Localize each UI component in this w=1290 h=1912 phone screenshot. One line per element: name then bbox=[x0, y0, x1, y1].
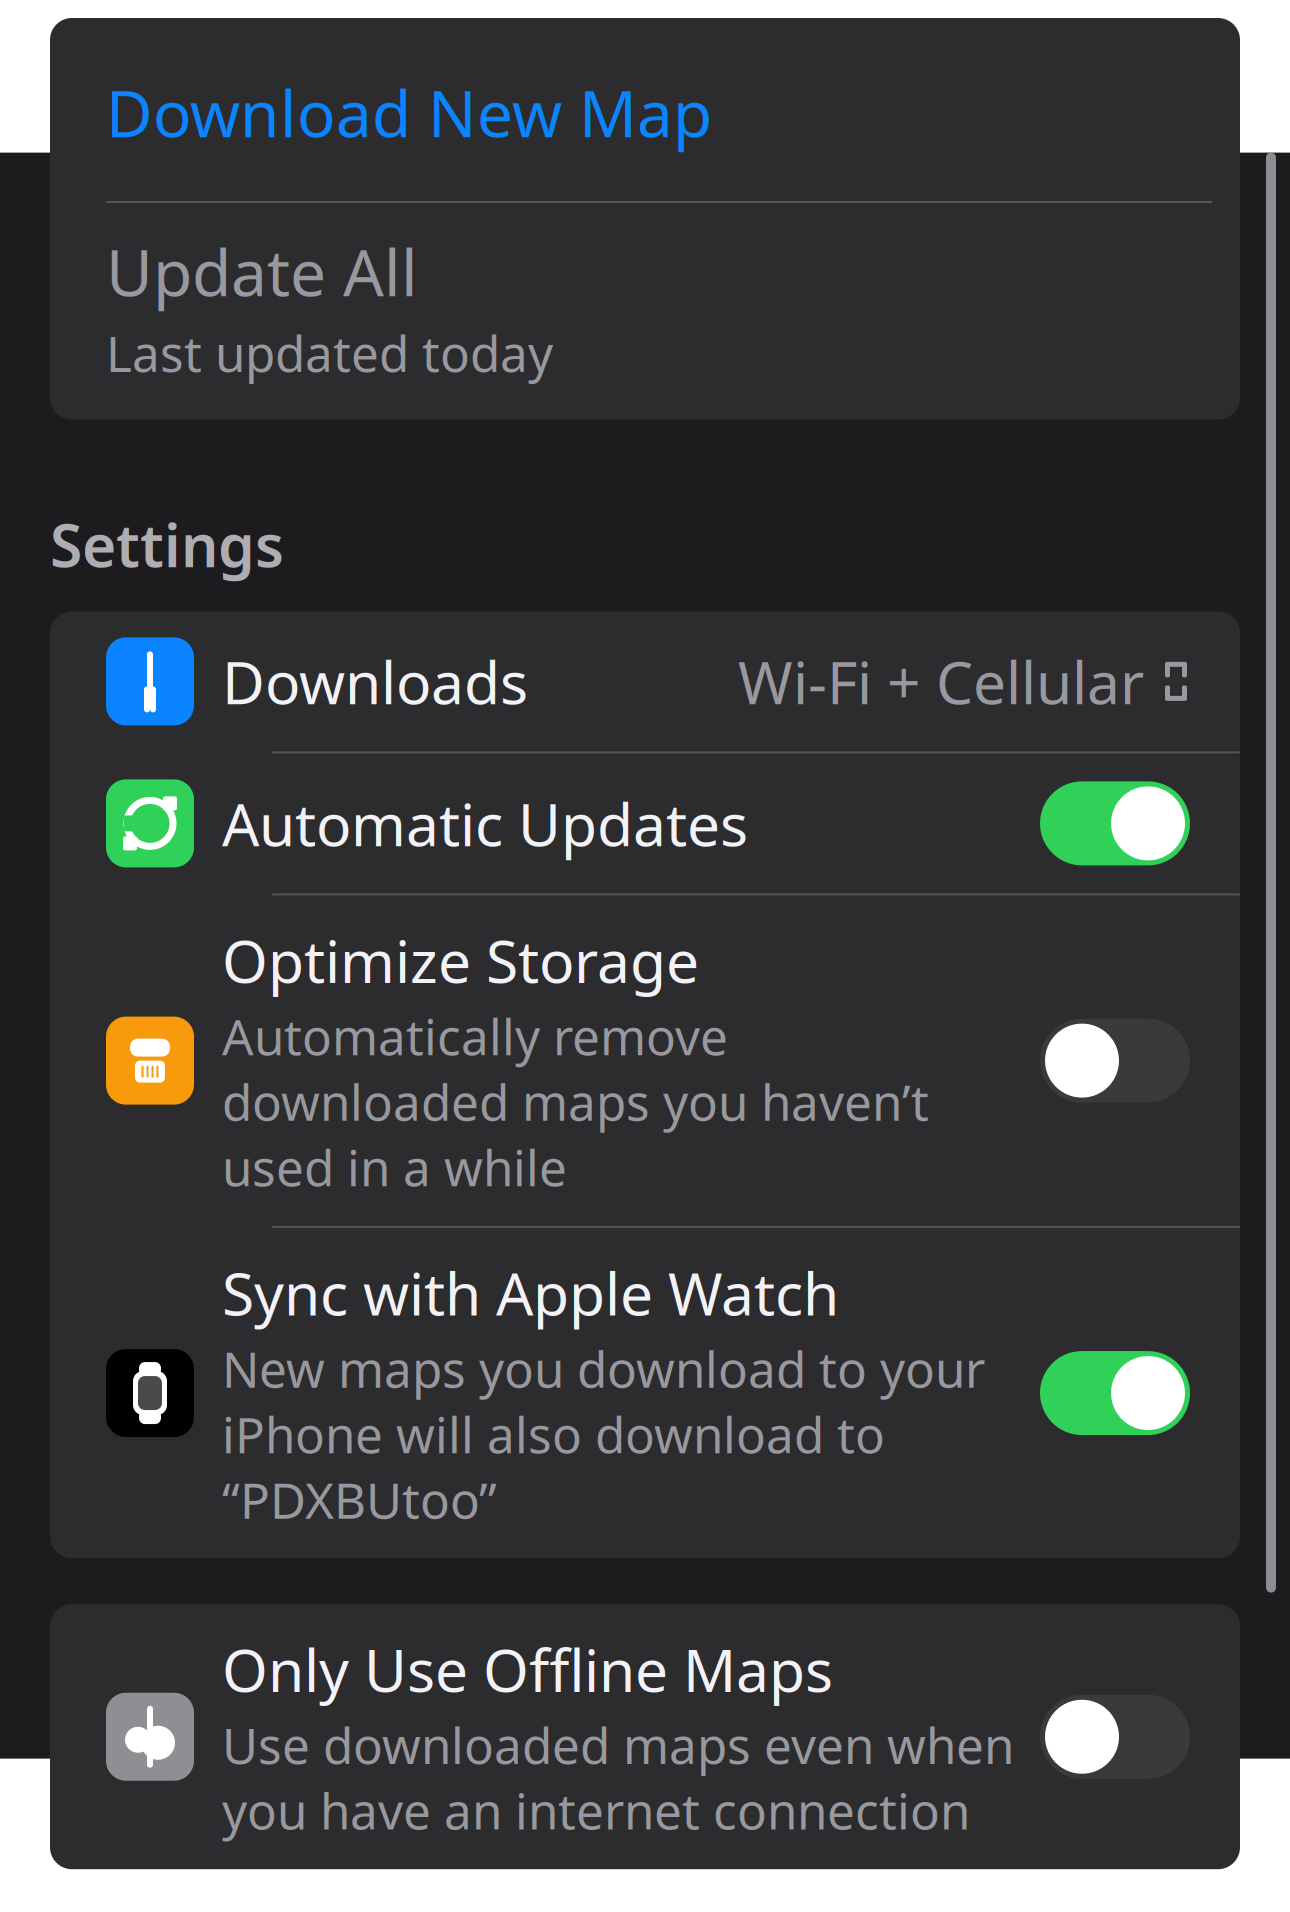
staticText: Only Use Offline Maps bbox=[222, 1630, 833, 1708]
button[interactable]: Automatic Updates, on bbox=[50, 753, 1240, 893]
staticText: Downloads bbox=[222, 642, 528, 720]
button[interactable]: Sync with Apple Watch, on bbox=[50, 1228, 1240, 1558]
staticText: Automatic Updates bbox=[222, 784, 748, 862]
button[interactable]: Only Use Offline Maps, off bbox=[50, 1604, 1240, 1869]
button[interactable]: Download New Map bbox=[50, 18, 1240, 201]
staticText: Sync with Apple Watch bbox=[222, 1254, 839, 1332]
staticText: Wi-Fi + Cellular bbox=[738, 642, 1144, 720]
staticText: Last updated today bbox=[106, 320, 553, 385]
button[interactable]: Update All, Last updated today bbox=[50, 203, 1240, 419]
staticText: Automatically remove downloaded maps you… bbox=[222, 1003, 929, 1200]
staticText: Update All bbox=[106, 229, 418, 314]
staticText: Optimize Storage bbox=[222, 921, 699, 999]
button[interactable]: Downloads, Wi-Fi + Cellular bbox=[50, 611, 1240, 751]
staticText: Use downloaded maps even when you have a… bbox=[222, 1712, 1014, 1843]
staticText: Settings bbox=[50, 505, 284, 583]
staticText: New maps you download to your iPhone wil… bbox=[222, 1336, 985, 1532]
button[interactable]: Optimize Storage, off bbox=[50, 895, 1240, 1226]
staticText: Download New Map bbox=[106, 70, 712, 155]
